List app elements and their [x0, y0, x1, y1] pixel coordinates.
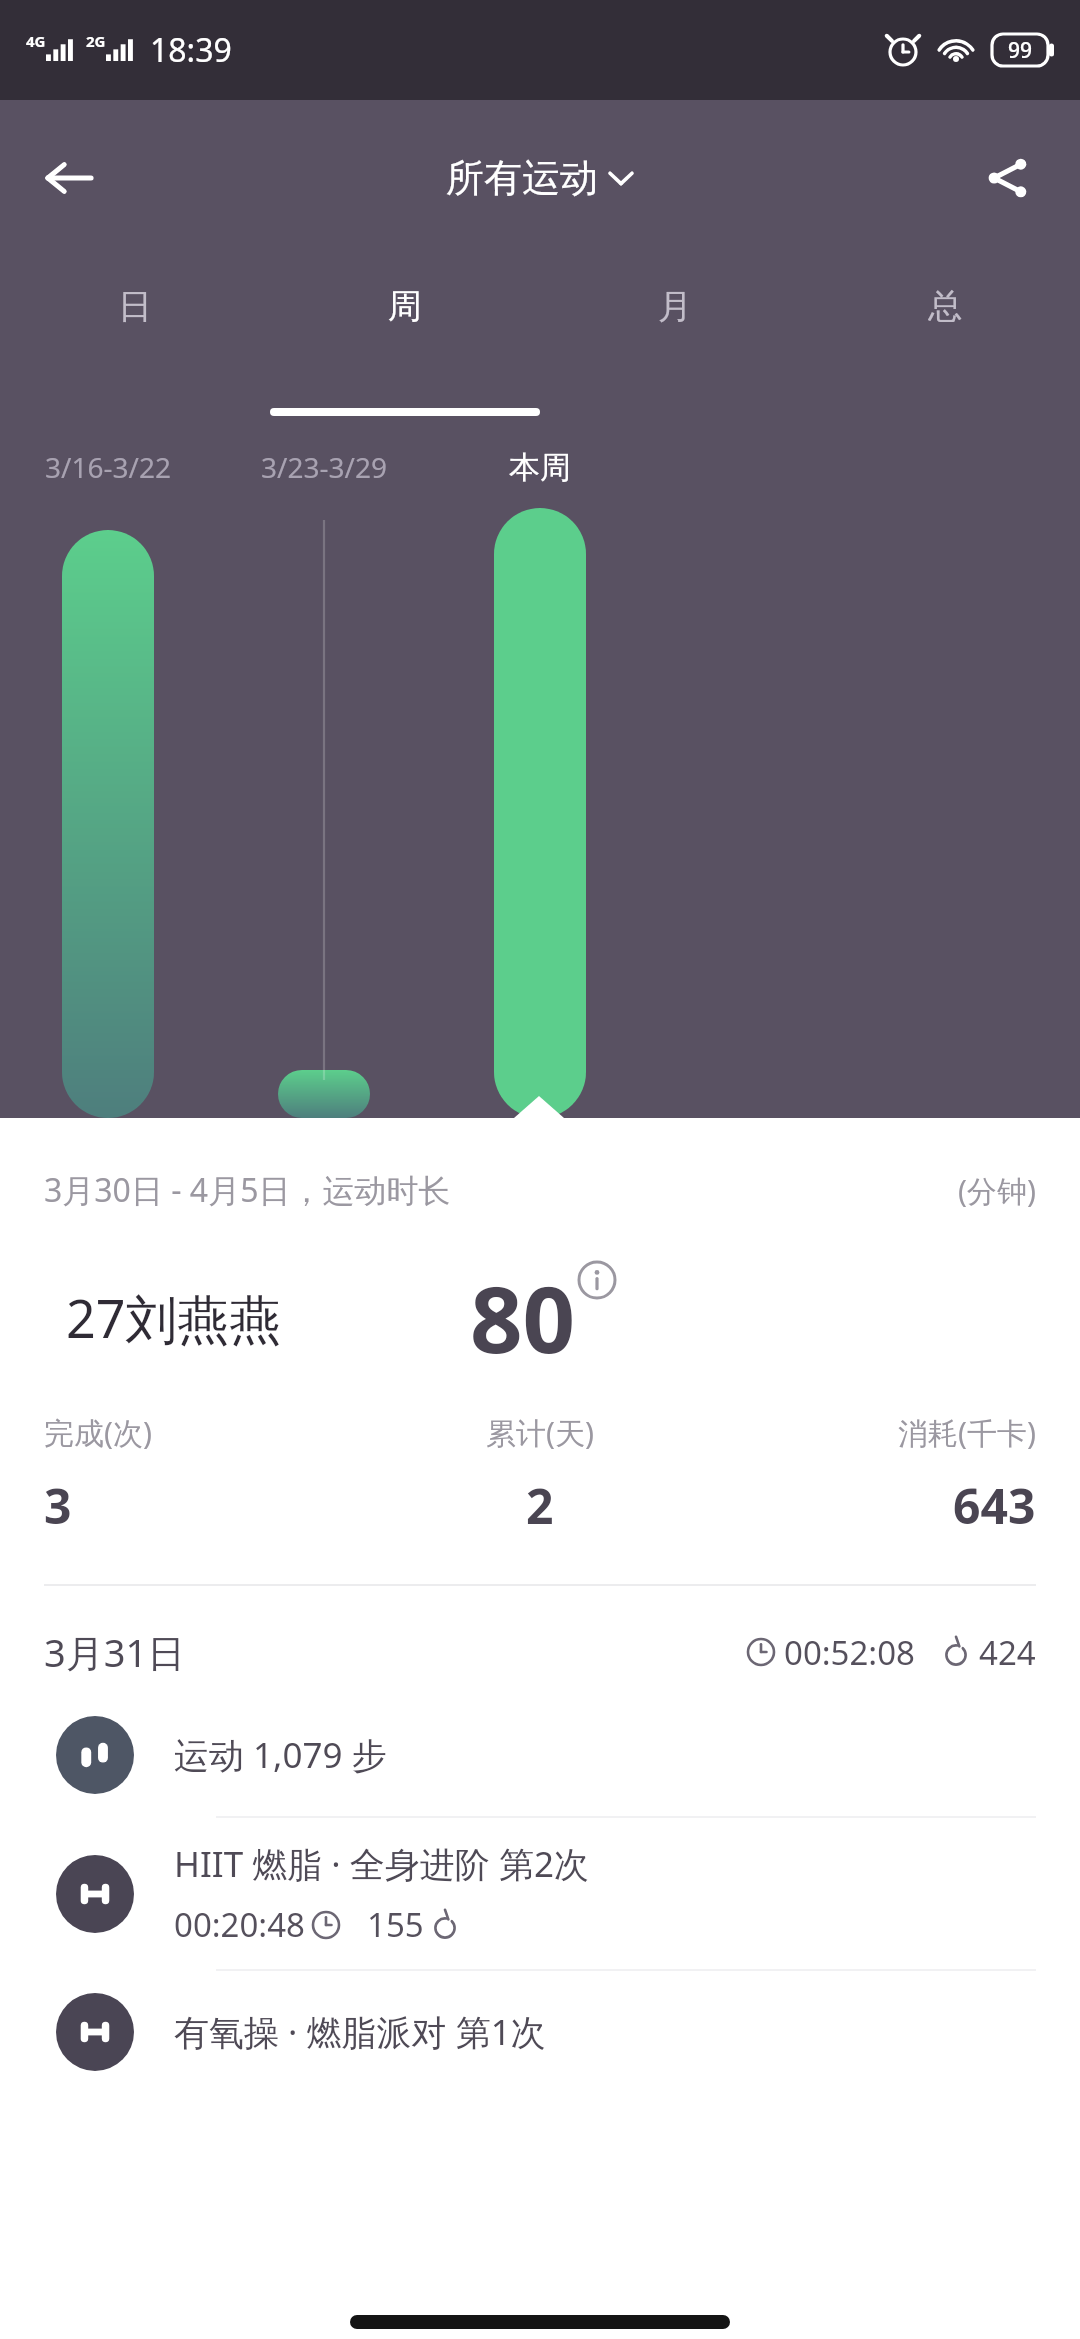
staticText: 80 — [470, 1255, 576, 1380]
staticText: 所有运动 — [446, 154, 598, 202]
staticText: 3 — [44, 1473, 72, 1538]
staticText: 累计(天) — [486, 1412, 594, 1453]
staticText: HIIT 燃脂 · 全身进阶 第2次 — [174, 1840, 589, 1888]
button[interactable]: 日 — [0, 255, 270, 420]
staticText: 3/16-3/22 — [45, 448, 171, 486]
staticText: 3/23-3/29 — [261, 448, 387, 486]
staticText: 99 — [1008, 36, 1033, 65]
staticText: 运动 1,079 步 — [174, 1731, 387, 1779]
staticText: 3月31日 — [44, 1626, 186, 1678]
staticText: 643 — [953, 1473, 1036, 1538]
button[interactable]: HIIT 燃脂 · 全身进阶 第2次 — [0, 1818, 1080, 1969]
staticText: 424 — [979, 1630, 1036, 1675]
staticText: 18:39 — [150, 28, 232, 72]
button[interactable]: 有氧操 · 燃脂派对 第1次 — [0, 1971, 1080, 2071]
staticText: 3月30日 - 4月5日，运动时长 — [44, 1168, 451, 1212]
staticText: 2G — [86, 31, 106, 51]
staticText: 周 — [388, 285, 422, 328]
button[interactable]: Share — [962, 133, 1052, 223]
button[interactable]: 月 — [540, 255, 810, 420]
button[interactable]: Back — [24, 133, 114, 223]
staticText: 完成(次) — [44, 1412, 152, 1453]
staticText: 00:52:08 — [784, 1630, 915, 1675]
staticText: 00:20:48 — [174, 1902, 305, 1947]
staticText: 月 — [658, 285, 692, 328]
button[interactable]: 总 — [810, 255, 1080, 420]
staticText: 总 — [928, 285, 962, 328]
staticText: 27刘燕燕 — [66, 1282, 282, 1353]
button[interactable]: 周 — [270, 255, 540, 420]
staticText: 消耗(千卡) — [898, 1412, 1036, 1453]
staticText: 2 — [526, 1473, 554, 1538]
staticText: 日 — [118, 285, 152, 328]
staticText: 4G — [26, 31, 46, 51]
staticText: (分钟) — [958, 1170, 1036, 1211]
button[interactable]: 所有运动 — [432, 144, 648, 212]
staticText: 本周 — [509, 448, 571, 487]
staticText: 155 — [367, 1902, 424, 1947]
staticText: 有氧操 · 燃脂派对 第1次 — [174, 2008, 546, 2056]
button[interactable]: 运动 1,079 步 — [0, 1694, 1080, 1816]
